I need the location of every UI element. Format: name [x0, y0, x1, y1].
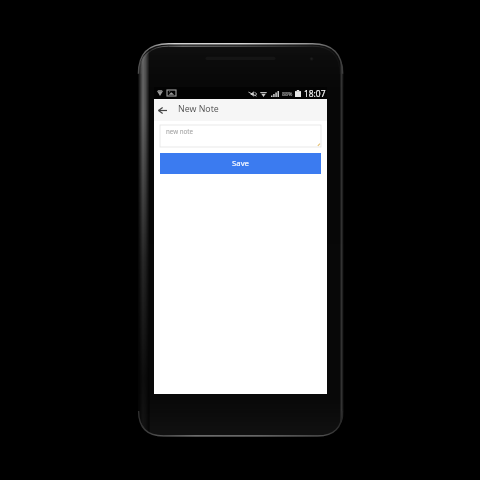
button[interactable]: new note: [160, 125, 321, 147]
staticText: 18:07: [304, 88, 326, 99]
staticText: Save: [232, 158, 250, 169]
staticText: new note: [166, 127, 193, 135]
button[interactable]: Save: [160, 153, 321, 174]
staticText: 88%: [282, 90, 293, 97]
button[interactable]: Navigate up: [156, 101, 169, 119]
staticText: New Note: [178, 103, 219, 115]
